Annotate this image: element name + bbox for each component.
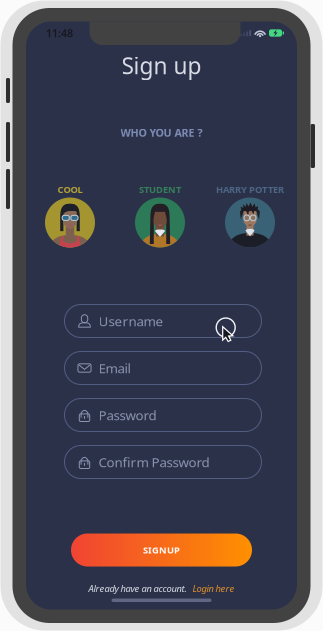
staticText: Confirm Password: [98, 453, 209, 471]
button[interactable]: Email: [64, 351, 261, 384]
staticText: Login here: [192, 582, 234, 595]
button[interactable]: Confirm Password: [64, 445, 261, 478]
button[interactable]: Username: [64, 304, 261, 337]
button[interactable]: Password: [64, 398, 261, 431]
button[interactable]: STUDENT: [115, 184, 205, 247]
button[interactable]: Login here: [192, 582, 234, 595]
staticText: 11:48: [46, 26, 73, 40]
button[interactable]: COOL: [25, 184, 115, 247]
staticText: STUDENT: [139, 183, 181, 196]
staticText: COOL: [57, 183, 82, 196]
button[interactable]: SIGNUP: [71, 533, 252, 566]
staticText: Sign up: [121, 50, 201, 80]
staticText: Already have an account.: [88, 582, 186, 595]
staticText: Password: [98, 406, 156, 424]
button[interactable]: HARRY POTTER: [205, 184, 295, 247]
staticText: Email: [98, 359, 130, 377]
staticText: Username: [98, 312, 163, 330]
staticText: SIGNUP: [143, 544, 180, 556]
staticText: WHO YOU ARE ?: [120, 125, 202, 140]
staticText: HARRY POTTER: [216, 183, 284, 196]
